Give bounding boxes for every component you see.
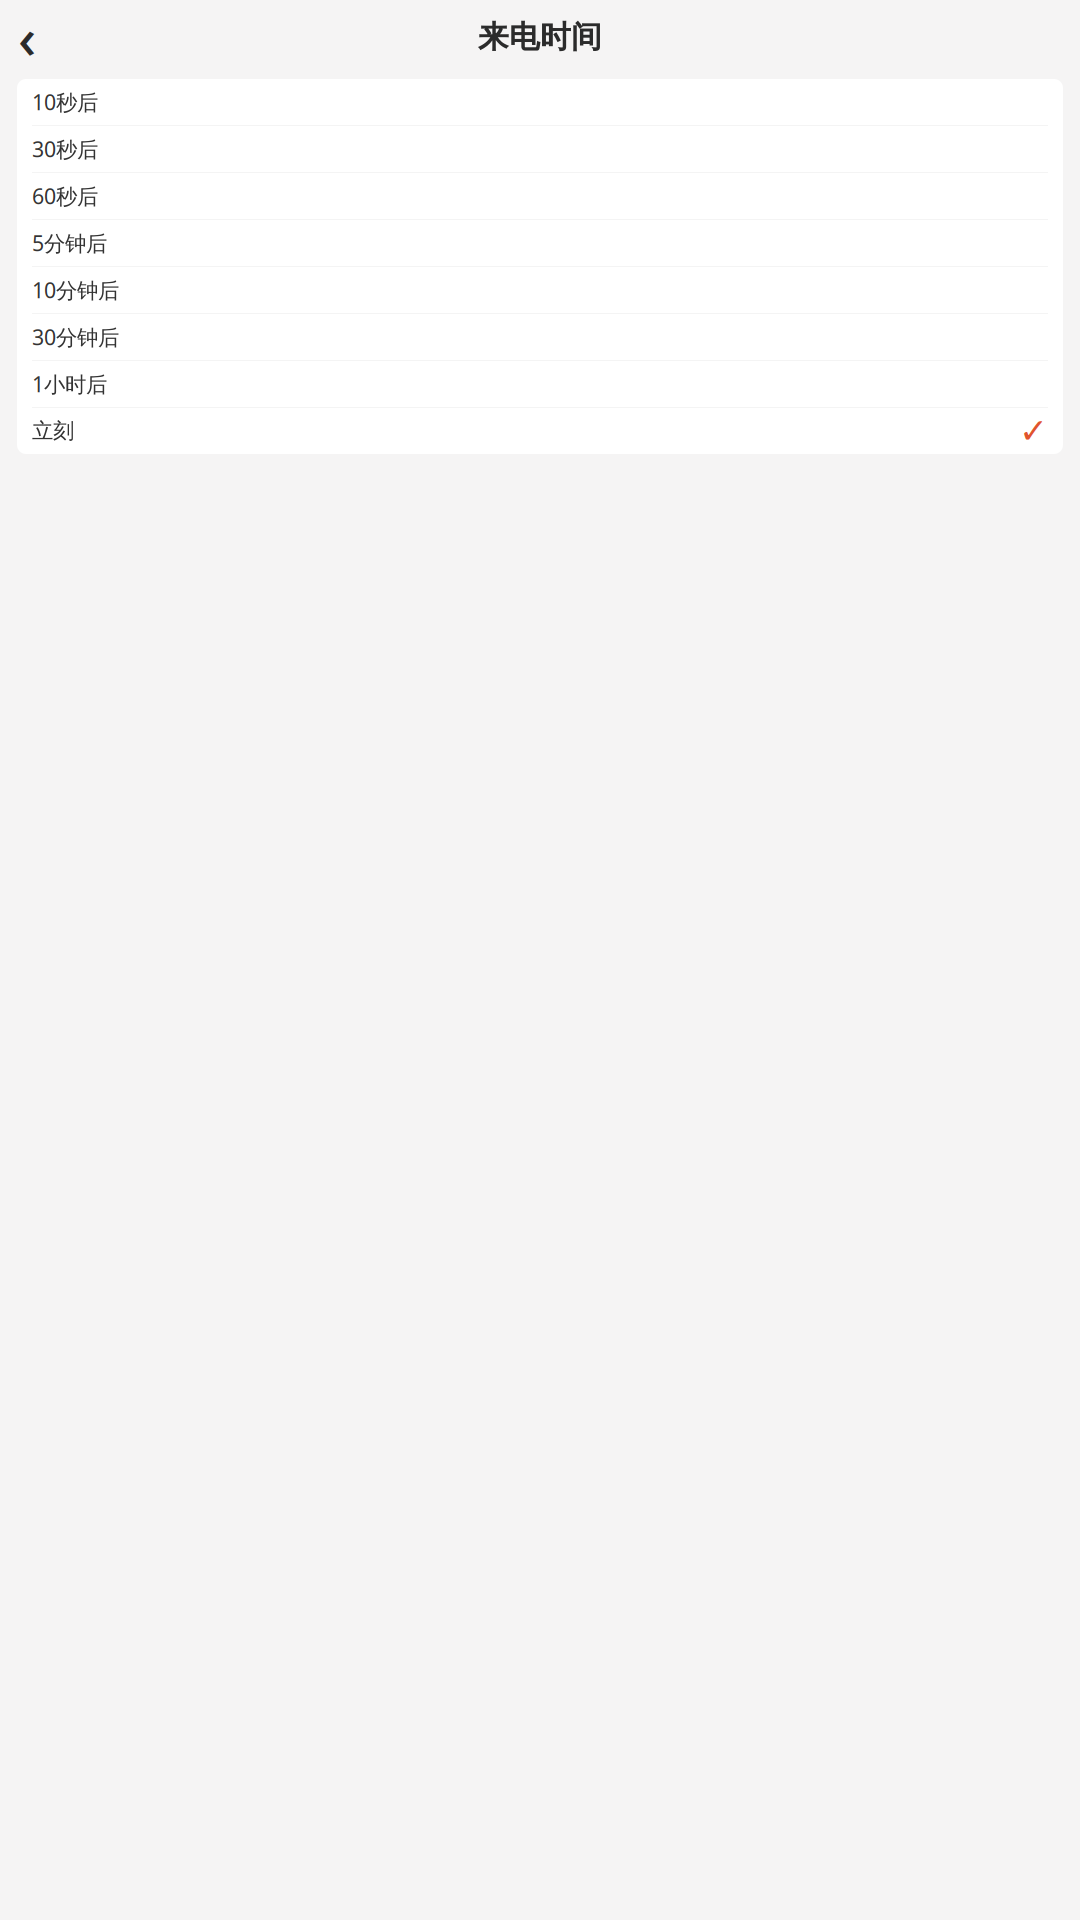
staticText: 5分钟后 — [32, 229, 107, 257]
staticText: 来电时间 — [478, 18, 602, 56]
button[interactable]: 30秒后 — [17, 126, 1063, 173]
staticText: ✓ — [1019, 411, 1048, 451]
staticText: ‹ — [18, 0, 36, 74]
staticText: 30秒后 — [32, 135, 98, 163]
staticText: 30分钟后 — [32, 323, 119, 351]
staticText: 立刻 — [32, 418, 74, 444]
button[interactable]: 5分钟后 — [17, 220, 1063, 267]
staticText: 60秒后 — [32, 182, 98, 210]
button[interactable]: 立刻 — [17, 408, 1063, 454]
staticText: 10秒后 — [32, 88, 98, 116]
button[interactable]: 10秒后 — [17, 79, 1063, 126]
button[interactable]: 30分钟后 — [17, 314, 1063, 361]
staticText: 1小时后 — [32, 370, 107, 398]
button[interactable]: 10分钟后 — [17, 267, 1063, 314]
button[interactable]: 1小时后 — [17, 361, 1063, 408]
button[interactable]: 返回 — [5, 15, 49, 59]
staticText: 10分钟后 — [32, 276, 119, 304]
button[interactable]: 60秒后 — [17, 173, 1063, 220]
